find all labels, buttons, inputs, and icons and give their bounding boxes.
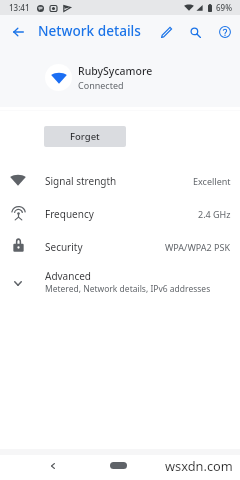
staticText: 69% <box>216 2 232 13</box>
button[interactable]: Edit <box>151 19 177 45</box>
staticText: 2.4 GHz <box>198 208 231 220</box>
staticText: WPA/WPA2 PSK <box>165 241 231 253</box>
button[interactable]: Back <box>43 456 62 475</box>
button[interactable]: Back <box>5 19 31 45</box>
button[interactable]: Forget <box>44 126 126 147</box>
staticText: Security <box>45 240 83 254</box>
staticText: Forget <box>70 130 100 143</box>
staticText: 13:41 <box>9 2 30 13</box>
staticText: Frequency <box>45 207 94 221</box>
button[interactable]: RubySycamore <box>0 55 240 100</box>
staticText: Advanced <box>45 269 91 283</box>
button[interactable]: Frequency <box>0 197 240 230</box>
button[interactable]: Search <box>182 19 208 45</box>
button[interactable]: Home <box>110 462 127 469</box>
staticText: Excellent <box>193 175 231 187</box>
staticText: Connected <box>78 79 124 91</box>
button[interactable]: Advanced <box>0 263 240 301</box>
staticText: Network details <box>38 21 141 40</box>
button[interactable]: Help <box>212 19 238 45</box>
button[interactable]: Security <box>0 230 240 263</box>
staticText: Signal strength <box>45 174 117 188</box>
button[interactable]: Signal strength <box>0 164 240 197</box>
staticText: RubySycamore <box>78 64 153 78</box>
staticText: wsxdn.com <box>165 457 233 474</box>
staticText: Metered, Network details, IPv6 addresses <box>45 283 211 295</box>
